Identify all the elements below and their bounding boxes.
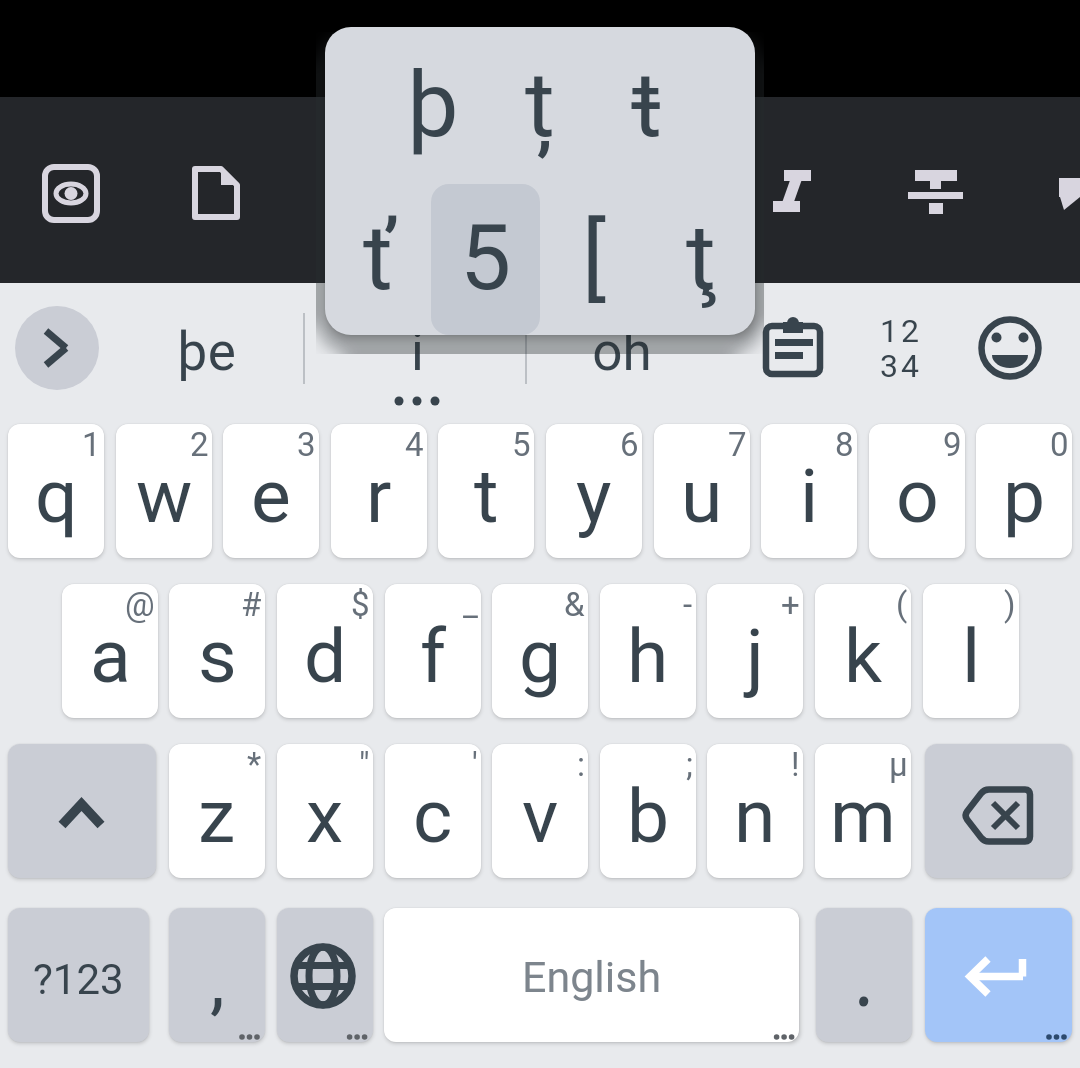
staticText: 1 xyxy=(82,425,101,464)
staticText: x xyxy=(306,772,344,860)
staticText: þe xyxy=(177,321,236,383)
staticText: ' xyxy=(472,745,478,784)
staticText: a xyxy=(90,612,131,700)
button[interactable] xyxy=(8,744,156,878)
button[interactable]: . xyxy=(816,908,912,1042)
button[interactable]: h xyxy=(600,584,696,718)
staticText: 3 xyxy=(297,425,316,464)
button[interactable]: x xyxy=(277,744,373,878)
staticText: 4 xyxy=(405,425,424,464)
staticText: µ xyxy=(889,745,908,784)
staticText: ; xyxy=(686,745,693,784)
staticText: q xyxy=(35,452,78,540)
button[interactable] xyxy=(925,908,1072,1042)
staticText: c xyxy=(413,772,453,860)
staticText: r xyxy=(366,452,392,540)
button[interactable] xyxy=(11,133,131,253)
staticText: , xyxy=(210,936,225,1024)
button[interactable]: r xyxy=(331,424,427,558)
staticText: _ xyxy=(463,585,478,624)
button[interactable]: o xyxy=(869,424,965,558)
staticText: e xyxy=(251,452,291,540)
staticText: o xyxy=(896,452,939,540)
staticText: 8 xyxy=(835,425,854,464)
button[interactable]: l xyxy=(923,584,1019,718)
button[interactable] xyxy=(736,289,846,409)
staticText: [ xyxy=(582,205,607,312)
button[interactable] xyxy=(881,133,1001,253)
staticText: w xyxy=(136,452,193,540)
button[interactable]: b xyxy=(600,744,696,878)
button[interactable]: q xyxy=(8,424,104,558)
button[interactable]: t xyxy=(438,424,534,558)
button[interactable]: e xyxy=(223,424,319,558)
staticText: oh xyxy=(592,321,652,383)
staticText: ( xyxy=(896,585,908,624)
staticText: - xyxy=(683,585,693,624)
staticText: * xyxy=(247,745,262,784)
staticText: 12 xyxy=(880,312,922,350)
button[interactable]: a xyxy=(62,584,158,718)
staticText: n xyxy=(734,772,776,860)
staticText: # xyxy=(241,585,262,624)
button[interactable]: j xyxy=(707,584,803,718)
staticText: 9 xyxy=(943,425,962,464)
staticText: 5 xyxy=(460,205,512,312)
button[interactable]: c xyxy=(385,744,481,878)
staticText: : xyxy=(577,745,585,784)
staticText: m xyxy=(830,772,896,860)
button[interactable]: y xyxy=(546,424,642,558)
button[interactable] xyxy=(156,133,276,253)
button[interactable]: þe xyxy=(106,282,306,422)
staticText: @ xyxy=(125,585,155,624)
button[interactable]: p xyxy=(976,424,1072,558)
button[interactable]: v xyxy=(492,744,588,878)
button[interactable]: u xyxy=(654,424,750,558)
button[interactable] xyxy=(850,289,950,409)
staticText: p xyxy=(1003,452,1046,540)
staticText: u xyxy=(681,452,723,540)
staticText: i xyxy=(411,321,424,383)
staticText: + xyxy=(781,585,800,624)
staticText: 2 xyxy=(190,425,209,464)
button[interactable] xyxy=(955,289,1065,409)
staticText: " xyxy=(359,745,370,784)
button[interactable]: s xyxy=(169,584,265,718)
button[interactable]: k xyxy=(815,584,911,718)
button[interactable]: z xyxy=(169,744,265,878)
staticText: ! xyxy=(791,745,800,784)
button[interactable] xyxy=(925,744,1072,878)
button[interactable]: i xyxy=(317,282,517,422)
staticText: s xyxy=(198,612,237,700)
button[interactable]: , xyxy=(169,908,265,1042)
button[interactable]: w xyxy=(116,424,212,558)
staticText: l xyxy=(962,612,981,700)
staticText: 0 xyxy=(1050,425,1069,464)
button[interactable]: ?123 xyxy=(8,908,149,1042)
staticText: $ xyxy=(351,585,370,624)
button[interactable]: g xyxy=(492,584,588,718)
staticText: . xyxy=(854,936,874,1024)
staticText: ť xyxy=(363,205,395,312)
staticText: i xyxy=(800,452,819,540)
staticText: 6 xyxy=(620,425,639,464)
button[interactable]: f xyxy=(385,584,481,718)
staticText: & xyxy=(564,585,585,624)
button[interactable]: oh xyxy=(522,282,722,422)
button[interactable] xyxy=(736,133,856,253)
staticText: 5 xyxy=(512,425,531,464)
button[interactable]: d xyxy=(277,584,373,718)
staticText: ) xyxy=(1004,585,1016,624)
staticText: h xyxy=(627,612,669,700)
staticText: 34 xyxy=(880,347,922,385)
staticText: ?123 xyxy=(33,955,124,1004)
button[interactable] xyxy=(15,306,99,390)
button[interactable]: English xyxy=(384,908,799,1042)
button[interactable]: i xyxy=(761,424,857,558)
staticText: 7 xyxy=(728,425,747,464)
staticText: f xyxy=(420,612,447,700)
button[interactable]: m xyxy=(815,744,911,878)
staticText: j xyxy=(746,612,764,700)
button[interactable]: n xyxy=(707,744,803,878)
button[interactable] xyxy=(277,908,373,1042)
